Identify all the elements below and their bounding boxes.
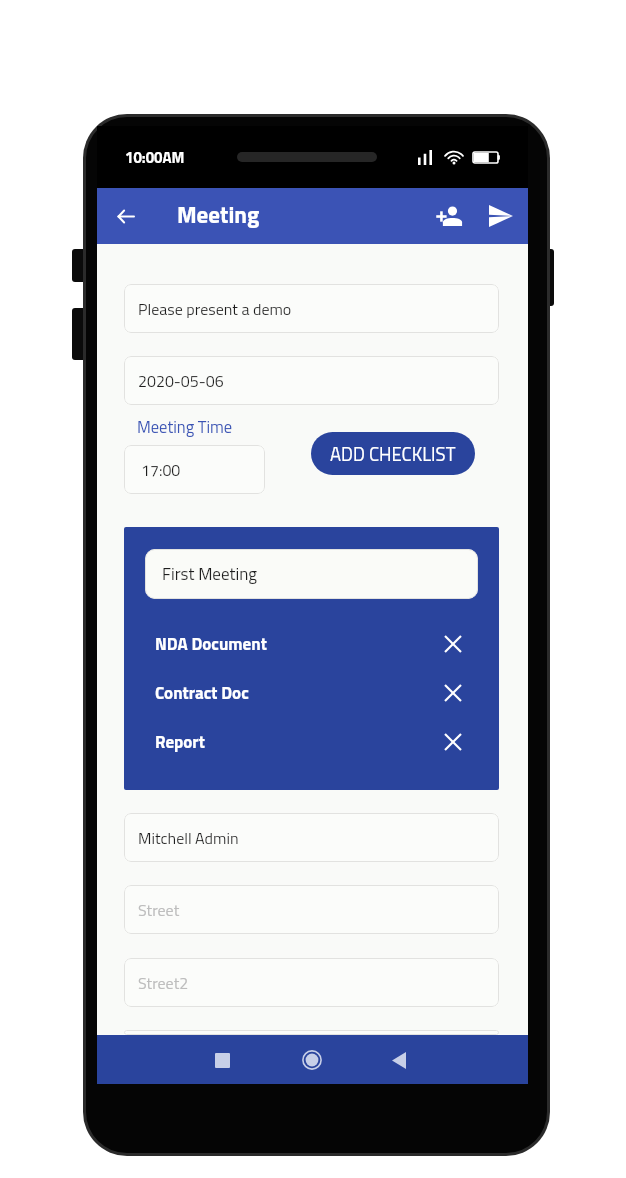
staticText: Contract Doc <box>155 680 249 706</box>
button[interactable]: 17:00 <box>124 445 265 494</box>
staticText: NDA Document <box>155 631 267 657</box>
button[interactable]: 2020-05-06 <box>124 356 499 405</box>
other: Remove Contract Doc <box>441 681 465 705</box>
button[interactable]: Street2 <box>124 958 499 1007</box>
button[interactable]: Back <box>378 1039 420 1081</box>
staticText: Please present a demo <box>138 297 292 321</box>
staticText: Mitchell Admin <box>138 826 239 850</box>
staticText: 10:00AM <box>125 146 185 169</box>
staticText: Street2 <box>138 971 189 995</box>
other: Remove NDA Document <box>441 632 465 656</box>
button[interactable]: NDA Document <box>124 619 499 668</box>
staticText: 17:00 <box>141 458 181 482</box>
button[interactable]: Please present a demo <box>124 284 499 333</box>
staticText: Meeting <box>177 197 260 232</box>
staticText: ADD CHECKLIST <box>330 440 456 468</box>
button[interactable]: Contract Doc <box>124 668 499 717</box>
button[interactable]: Recent apps <box>201 1039 243 1081</box>
staticText: Meeting Time <box>137 414 233 439</box>
button[interactable]: Street <box>124 885 499 934</box>
button[interactable]: ADD CHECKLIST <box>311 432 475 475</box>
button[interactable]: Add person <box>426 194 472 238</box>
staticText: Report <box>155 729 205 755</box>
button[interactable]: Mitchell Admin <box>124 813 499 862</box>
staticText: First Meeting <box>162 561 258 587</box>
staticText: 2020-05-06 <box>138 369 224 393</box>
button[interactable]: Report <box>124 717 499 766</box>
button[interactable] <box>124 1030 499 1035</box>
button[interactable]: Back <box>105 196 145 236</box>
staticText: Street <box>138 898 180 922</box>
button[interactable]: First Meeting <box>145 549 478 599</box>
other: Remove Report <box>441 730 465 754</box>
button[interactable]: Home <box>291 1039 333 1081</box>
button[interactable]: Send <box>479 194 523 238</box>
